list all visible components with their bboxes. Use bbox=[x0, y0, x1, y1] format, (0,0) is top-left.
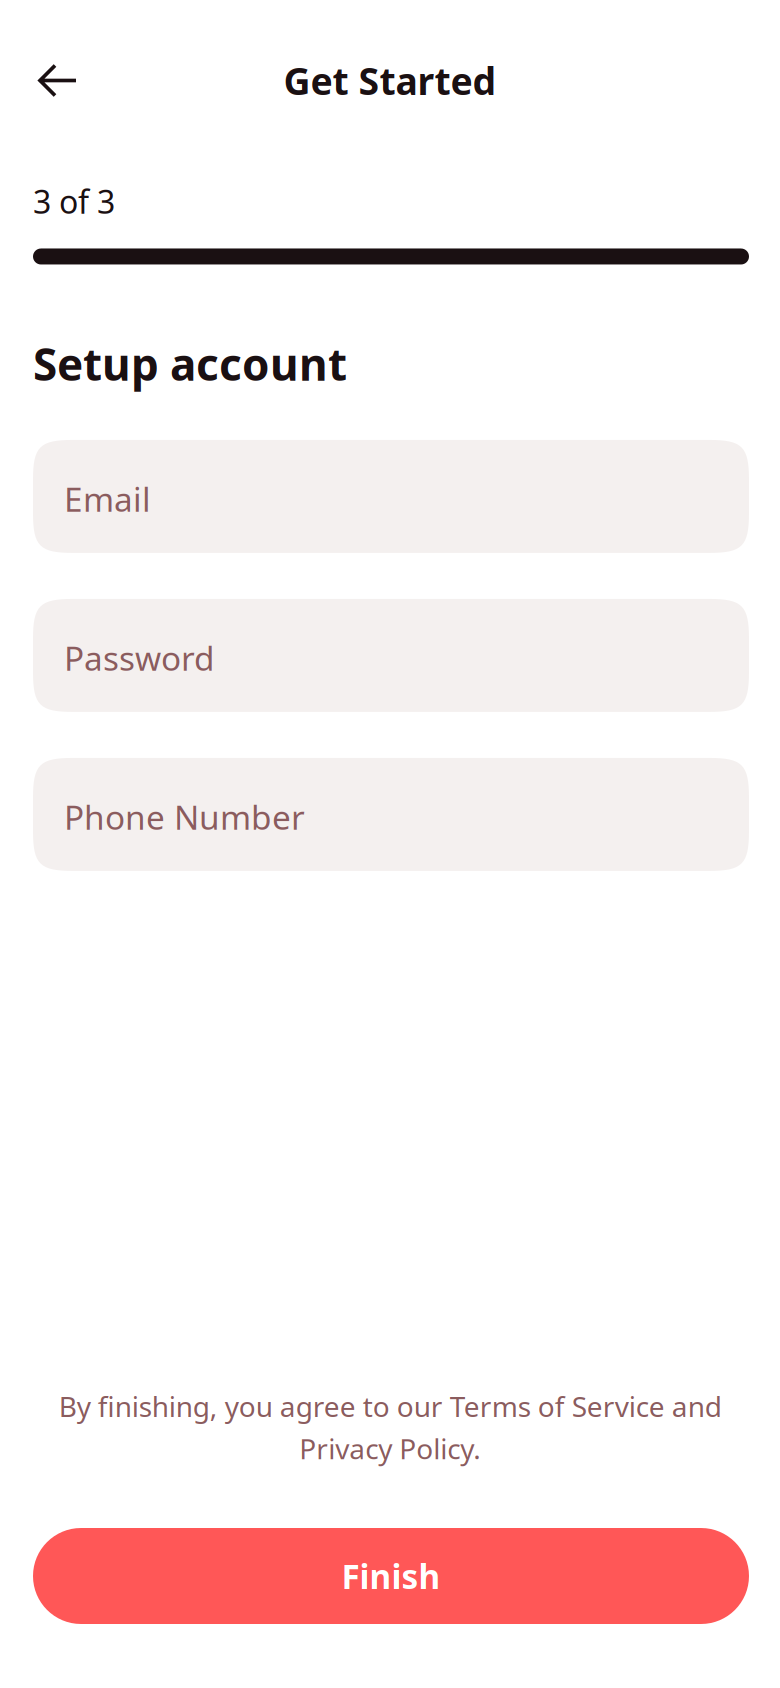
button[interactable]: Finish bbox=[33, 1528, 749, 1624]
staticText: Get Started bbox=[283, 56, 496, 105]
staticText: Setup account bbox=[33, 334, 347, 393]
staticText: Finish bbox=[341, 1554, 440, 1598]
button[interactable]: Email bbox=[33, 440, 749, 553]
staticText: Password bbox=[64, 636, 215, 680]
staticText: By finishing, you agree to our Terms of … bbox=[58, 1388, 721, 1467]
button[interactable]: Password bbox=[33, 599, 749, 712]
staticText: Email bbox=[64, 477, 151, 521]
staticText: Phone Number bbox=[64, 795, 305, 839]
button[interactable]: Back bbox=[20, 49, 89, 111]
button[interactable]: Phone Number bbox=[33, 758, 749, 871]
staticText: 3 of 3 bbox=[33, 180, 115, 222]
